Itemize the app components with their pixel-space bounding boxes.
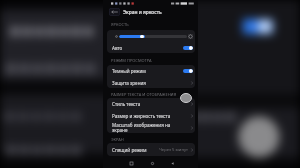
staticText: ЭКРАН (111, 137, 124, 142)
button[interactable]: Back (109, 8, 120, 16)
staticText: Через 5 минут (159, 147, 189, 153)
button[interactable]: Размер и жирность текста (107, 110, 195, 122)
button[interactable]: Авто (107, 42, 195, 53)
staticText: Размер и жирность текста (112, 113, 191, 119)
button[interactable] (107, 30, 195, 42)
staticText: Спящий режим (112, 147, 159, 153)
button[interactable]: Спящий режим (107, 143, 195, 156)
button[interactable]: Home (147, 158, 157, 168)
staticText: Экран и яркость (123, 9, 162, 16)
button[interactable]: Recent apps (126, 158, 136, 168)
button[interactable]: Масштаб изображения на экране (107, 122, 195, 133)
staticText: Защита зрения (112, 80, 191, 86)
button[interactable]: Back (167, 158, 177, 168)
button[interactable]: Темный режим (107, 65, 195, 77)
button[interactable]: Защита зрения (107, 77, 195, 88)
staticText: Стиль текста (112, 101, 191, 107)
staticText: Темный режим (112, 68, 183, 74)
button[interactable]: Стиль текста (107, 98, 195, 110)
staticText: Масштаб изображения на экране (112, 122, 191, 133)
staticText: РЕЖИМ ПРОСМОТРА (111, 58, 152, 63)
staticText: РАЗМЕР ТЕКСТА И ОТОБРАЖЕНИЯ (111, 92, 177, 97)
staticText: Авто (112, 45, 183, 51)
staticText: ЯРКОСТЬ (111, 22, 129, 27)
